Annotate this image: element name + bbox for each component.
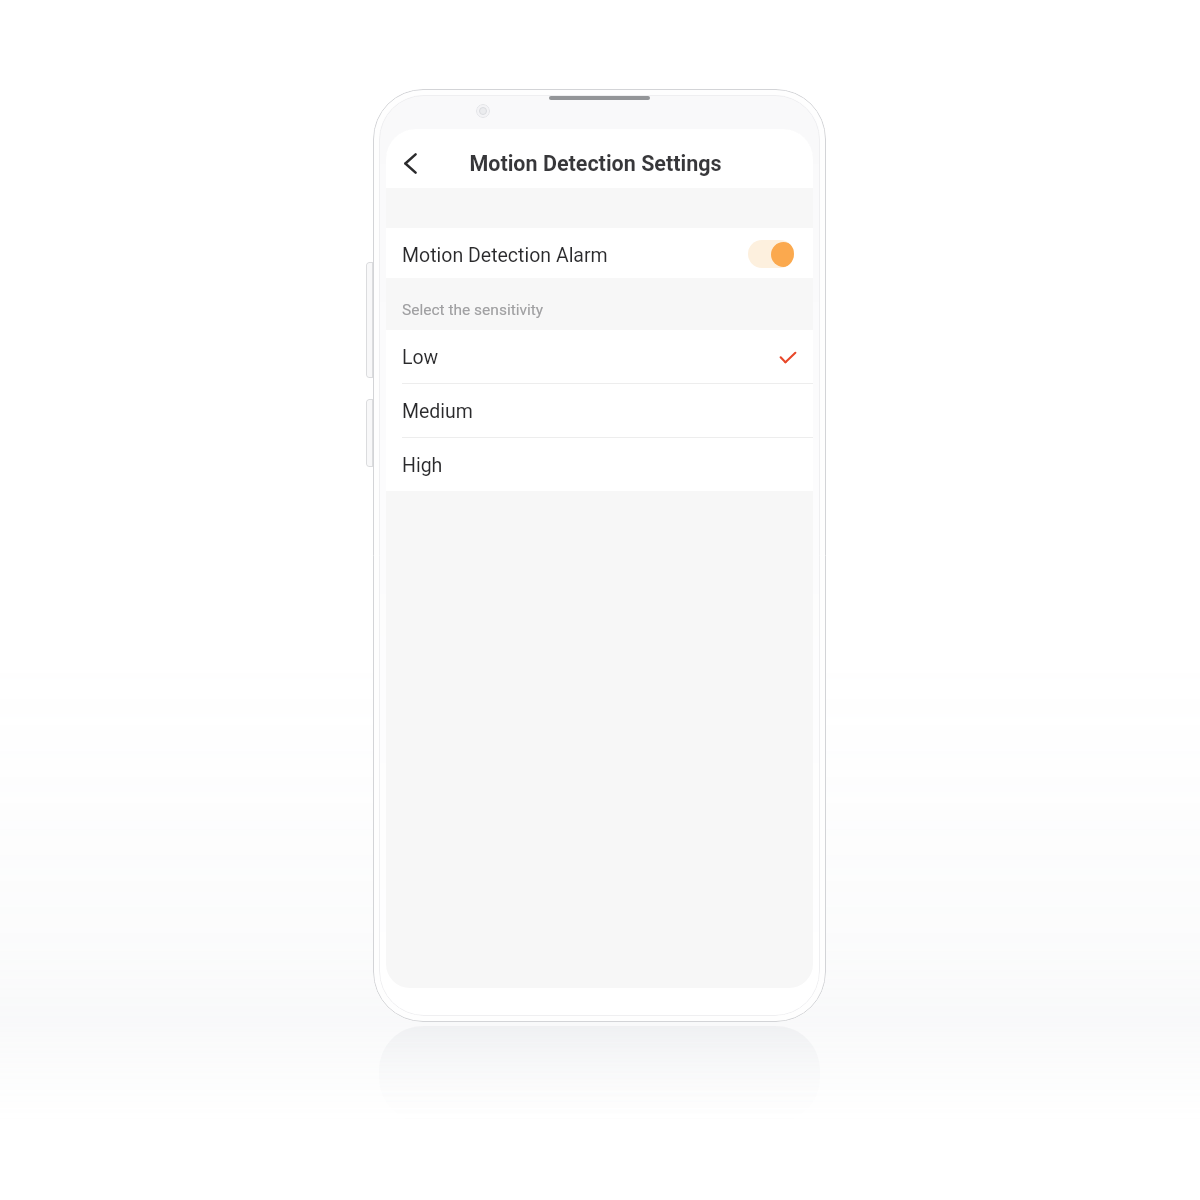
button[interactable]: Medium	[386, 384, 813, 437]
button[interactable]: Motion Detection Alarm	[386, 228, 813, 278]
button[interactable]: Back	[389, 140, 431, 186]
staticText: Motion Detection Alarm	[402, 244, 608, 267]
staticText: Medium	[402, 400, 473, 423]
button[interactable]: Motion detection alarm toggle	[748, 240, 794, 268]
button[interactable]: High	[386, 438, 813, 491]
staticText: High	[402, 454, 443, 477]
button[interactable]: Low	[386, 330, 813, 383]
staticText: Select the sensitivity	[402, 301, 544, 319]
staticText: Low	[402, 346, 439, 369]
staticText: Motion Detection Settings	[469, 151, 722, 176]
